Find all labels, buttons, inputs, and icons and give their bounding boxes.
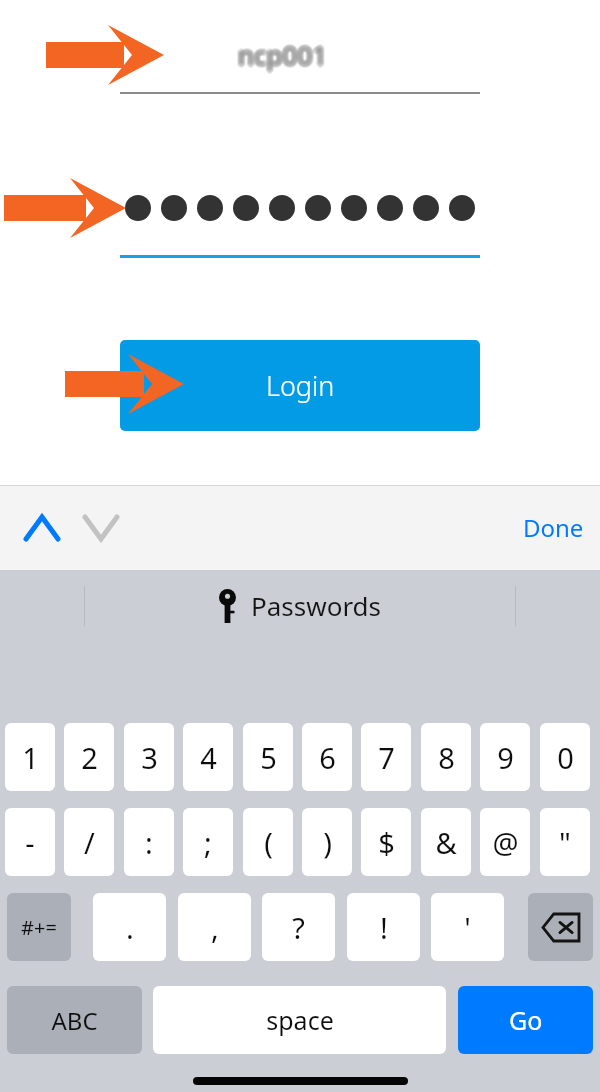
staticText: ncp001 (240, 37, 330, 72)
staticText: 2 (81, 738, 98, 777)
staticText: ncp001 (239, 39, 329, 74)
button[interactable]: Passwords (219, 588, 382, 623)
button[interactable]: #+= (7, 893, 71, 961)
staticText: Go (509, 1003, 543, 1037)
staticText: ncp001 (236, 35, 326, 70)
staticText: ncp001 (241, 37, 331, 72)
staticText: ncp001 (236, 37, 326, 72)
staticText: ncp001 (237, 38, 327, 73)
staticText: ( (264, 823, 273, 862)
staticText: space (266, 1003, 334, 1037)
staticText: ncp001 (236, 36, 326, 71)
staticText: ! (380, 908, 388, 947)
staticText: ncp001 (241, 36, 331, 71)
staticText: & (435, 823, 457, 862)
staticText: Login (266, 367, 335, 404)
staticText: ncp001 (237, 35, 327, 70)
staticText: 3 (141, 738, 158, 777)
button[interactable]: Go (458, 986, 593, 1054)
staticText: ncp001 (238, 34, 328, 69)
staticText: ncp001 (235, 37, 325, 72)
staticText: 4 (200, 738, 217, 777)
staticText: ncp001 (239, 36, 329, 71)
staticText: ncp001 (238, 38, 328, 73)
staticText: " (559, 823, 571, 862)
button[interactable]: 3 (124, 723, 174, 791)
staticText: Passwords (251, 588, 382, 623)
button[interactable]: , (178, 893, 251, 961)
button[interactable]: ABC (7, 986, 142, 1054)
button[interactable]: $ (361, 808, 411, 876)
staticText: ncp001 (237, 37, 327, 72)
staticText: 1 (22, 738, 39, 777)
staticText: / (84, 823, 95, 862)
button[interactable]: & (421, 808, 471, 876)
button[interactable]: ; (183, 808, 233, 876)
button[interactable]: ! (347, 893, 420, 961)
button[interactable]: 9 (480, 723, 530, 791)
button[interactable]: 7 (361, 723, 411, 791)
staticText: 7 (378, 738, 395, 777)
button[interactable]: ' (431, 893, 504, 961)
staticText: ncp001 (240, 36, 330, 71)
staticText: ; (204, 823, 212, 862)
staticText: ncp001 (240, 39, 330, 74)
button[interactable]: Login (120, 340, 480, 431)
button[interactable] (120, 186, 480, 230)
staticText: $ (378, 823, 395, 862)
button[interactable]: . (93, 893, 166, 961)
button[interactable]: 8 (421, 723, 471, 791)
staticText: ABC (51, 1004, 98, 1037)
staticText: ) (323, 823, 332, 862)
button[interactable]: ? (262, 893, 335, 961)
button[interactable]: / (64, 808, 114, 876)
staticText: ncp001 (238, 36, 328, 71)
staticText: 6 (319, 738, 336, 777)
staticText: ncp001 (235, 38, 325, 73)
button[interactable]: @ (480, 808, 530, 876)
staticText: ncp001 (240, 35, 330, 70)
staticText: ncp001 (238, 35, 328, 70)
button[interactable]: " (540, 808, 590, 876)
staticText: : (145, 823, 153, 862)
staticText: ncp001 (240, 38, 330, 73)
button[interactable]: 6 (302, 723, 352, 791)
staticText: ' (464, 908, 471, 947)
button[interactable]: 5 (243, 723, 293, 791)
staticText: ncp001 (239, 37, 329, 72)
staticText: - (25, 823, 35, 862)
staticText: ncp001 (236, 38, 326, 73)
button[interactable]: 2 (64, 723, 114, 791)
button[interactable]: ) (302, 808, 352, 876)
staticText: ? (292, 908, 305, 947)
staticText: #+= (21, 914, 57, 941)
button[interactable]: Done (523, 511, 584, 544)
staticText: ncp001 (236, 39, 326, 74)
button[interactable]: space (153, 986, 446, 1054)
button[interactable]: Next field (77, 504, 125, 552)
staticText: ncp001 (239, 35, 329, 70)
staticText: . (126, 908, 134, 947)
staticText: ncp001 (238, 37, 328, 72)
staticText: 8 (438, 738, 455, 777)
button[interactable]: ( (243, 808, 293, 876)
staticText: ncp001 (241, 38, 331, 73)
staticText: ncp001 (239, 34, 329, 69)
staticText: 9 (497, 738, 514, 777)
staticText: ncp001 (237, 39, 327, 74)
staticText: ncp001 (237, 36, 327, 71)
staticText: ncp001 (239, 40, 329, 75)
button[interactable]: - (5, 808, 55, 876)
staticText: ncp001 (235, 36, 325, 71)
button[interactable]: 0 (540, 723, 590, 791)
button[interactable]: 1 (5, 723, 55, 791)
staticText: ncp001 (238, 39, 328, 74)
staticText: 0 (557, 738, 574, 777)
button[interactable]: 4 (183, 723, 233, 791)
staticText: ncp001 (237, 40, 327, 75)
button[interactable]: Previous field (18, 504, 66, 552)
staticText: 5 (260, 738, 277, 777)
staticText: @ (492, 823, 519, 862)
button[interactable]: : (124, 808, 174, 876)
button[interactable]: Backspace (528, 893, 593, 961)
